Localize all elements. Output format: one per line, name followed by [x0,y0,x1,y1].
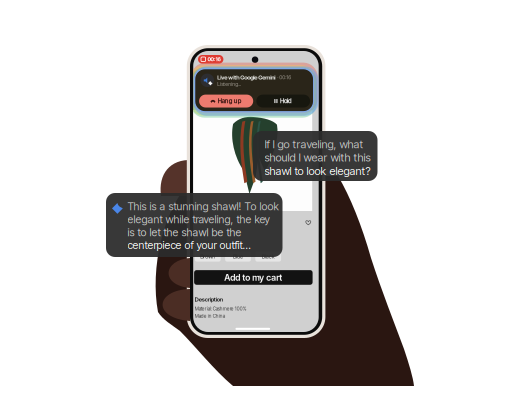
button[interactable]: Add to my cart [194,270,313,285]
button[interactable]: Add to wishlist [303,217,314,228]
staticText: is to let the shawl be the [127,226,241,239]
staticText: 00:16 [207,56,220,63]
staticText: Add to my cart [224,272,282,283]
staticText: If I go traveling, what [264,137,363,151]
staticText: Listening... [217,81,241,87]
staticText: elegant while traveling, the key [127,213,269,226]
staticText: · 00:16 [277,74,291,81]
button[interactable]: Black [255,251,281,262]
button[interactable]: Brown [195,251,221,262]
staticText: Blue [233,253,243,260]
staticText: This is a stunning shawl! To look [127,200,278,213]
staticText: Brown [200,253,215,260]
staticText: Black [262,253,275,260]
staticText: Material: Cashmere 100% [195,306,247,312]
staticText: Hang up [218,97,242,105]
staticText: Made in China [195,313,225,319]
staticText: Hold [280,97,292,105]
staticText: centerpiece of your outfit… [127,239,250,252]
staticText: Description [195,296,223,303]
staticText: should I wear with this [264,151,370,164]
button[interactable]: Hang up [199,95,253,107]
staticText: shawl to look elegant? [264,164,370,178]
staticText: Live with Google Gemini [217,74,275,81]
button[interactable]: Blue [225,251,251,262]
button[interactable]: Hold [256,95,310,107]
